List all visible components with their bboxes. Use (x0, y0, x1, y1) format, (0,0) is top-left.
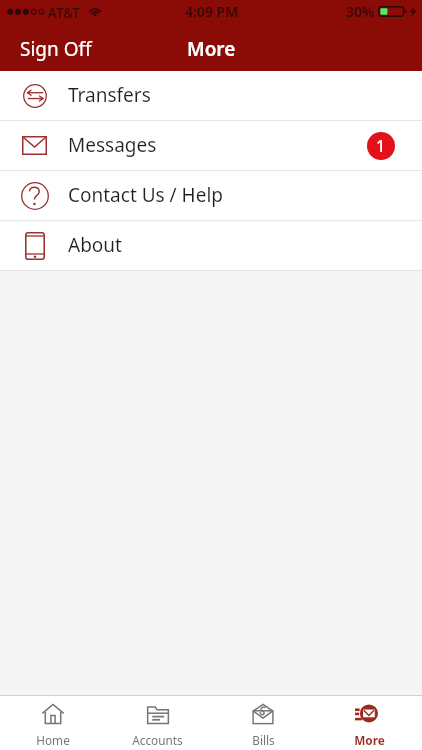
staticText: Transfers (68, 82, 151, 108)
button[interactable]: Home (0, 696, 105, 750)
staticText: Bills (252, 732, 275, 748)
button[interactable]: About (0, 221, 422, 271)
button[interactable]: Messages (0, 121, 422, 171)
staticText: More (187, 36, 236, 62)
staticText: 4:09 PM (185, 2, 239, 21)
staticText: Home (36, 732, 70, 748)
staticText: 30% (346, 2, 375, 21)
button[interactable]: Bills (210, 696, 316, 750)
staticText: 1 (376, 135, 386, 157)
staticText: AT&T (48, 4, 80, 22)
staticText: Contact Us / Help (68, 182, 224, 208)
button[interactable]: More (316, 696, 422, 750)
staticText: Accounts (132, 732, 183, 748)
button[interactable]: Transfers (0, 71, 422, 121)
button[interactable]: Accounts (105, 696, 210, 750)
staticText: Sign Off (20, 36, 92, 62)
staticText: More (354, 732, 385, 748)
staticText: About (68, 232, 122, 258)
staticText: Messages (68, 132, 157, 158)
button[interactable]: Contact Us / Help (0, 171, 422, 221)
button[interactable]: Sign Off (0, 27, 108, 71)
